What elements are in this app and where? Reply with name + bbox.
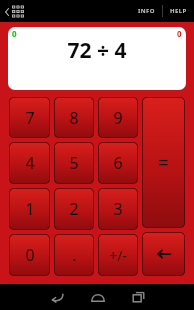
button[interactable]: 5 <box>54 142 94 184</box>
staticText: 6 <box>113 152 123 174</box>
staticText: 72 ÷ 4 <box>8 36 186 65</box>
button[interactable]: 1 <box>9 188 50 230</box>
button[interactable]: 8 <box>54 97 94 138</box>
staticText: +/- <box>109 246 127 265</box>
staticText: 4 <box>25 152 35 174</box>
button[interactable]: Back <box>36 284 77 310</box>
button[interactable]: Backspace <box>142 232 185 276</box>
staticText: 5 <box>69 152 79 174</box>
button[interactable]: . <box>54 234 94 276</box>
button[interactable]: 0 <box>8 27 186 90</box>
button[interactable]: 6 <box>98 142 138 184</box>
staticText: HELP <box>170 7 187 15</box>
button[interactable]: 0 <box>9 234 50 276</box>
button[interactable]: +/- <box>98 234 138 276</box>
staticText: 0 <box>177 28 182 39</box>
button[interactable]: 4 <box>9 142 50 184</box>
staticText: 9 <box>113 107 123 129</box>
button[interactable]: = <box>142 97 185 228</box>
button[interactable]: HELP <box>163 0 194 22</box>
button[interactable]: Home <box>77 284 118 310</box>
staticText: 1 <box>25 198 35 220</box>
staticText: 0 <box>12 28 17 39</box>
staticText: 0 <box>25 244 35 266</box>
button[interactable]: Recent apps <box>118 284 159 310</box>
staticText: 8 <box>69 107 79 129</box>
button[interactable]: 3 <box>98 188 138 230</box>
button[interactable]: 7 <box>9 97 50 138</box>
staticText: 2 <box>69 198 79 220</box>
button[interactable]: Navigate up <box>2 4 27 19</box>
button[interactable]: 9 <box>98 97 138 138</box>
button[interactable]: INFO <box>131 0 162 22</box>
staticText: . <box>72 244 77 266</box>
staticText: = <box>158 150 169 175</box>
staticText: INFO <box>138 7 155 15</box>
staticText: 7 <box>25 107 35 129</box>
staticText: 3 <box>113 198 123 220</box>
button[interactable]: 2 <box>54 188 94 230</box>
